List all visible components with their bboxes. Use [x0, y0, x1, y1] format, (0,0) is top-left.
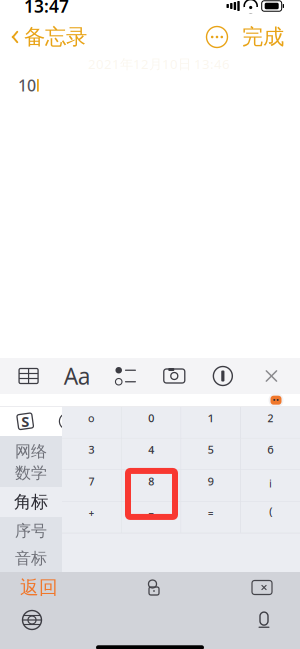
button[interactable]: ⁻ [122, 502, 181, 533]
button[interactable]: ¹ [181, 407, 240, 438]
staticText: ⁼ [208, 506, 214, 529]
button[interactable]: 键盘 [135, 408, 169, 434]
staticText: 2021年12月10日 13:46 [88, 55, 230, 73]
staticText: ⁻ [148, 506, 154, 529]
staticText: Aa [64, 361, 91, 391]
button[interactable]: ⁰ [122, 407, 181, 438]
button[interactable]: 序号 [0, 517, 62, 545]
staticText: ¹ [208, 411, 214, 434]
button[interactable]: ⁵ [181, 439, 240, 470]
button[interactable]: 搜狗输入法 [8, 408, 42, 434]
staticText: ⁸ [148, 474, 154, 497]
button[interactable]: ⁺ [62, 502, 121, 533]
button[interactable]: ⁱ [241, 470, 300, 501]
button[interactable]: 清单 [106, 359, 146, 393]
staticText: 完成 [242, 24, 284, 50]
staticText: 音标 [15, 549, 47, 568]
button[interactable]: 语音输入 [93, 408, 127, 434]
staticText: º [88, 411, 95, 434]
button[interactable]: º [62, 407, 121, 438]
button[interactable]: 语音输入 [244, 605, 284, 635]
staticText: ⁵ [208, 442, 214, 465]
button[interactable]: ⁴ [122, 439, 181, 470]
button[interactable]: 格式 [57, 359, 97, 393]
staticText: ⁶ [267, 442, 273, 465]
button[interactable]: 标记 [203, 359, 243, 393]
staticText: ⁱ [269, 474, 272, 497]
staticText: ⁷ [88, 474, 94, 497]
button[interactable]: 返回 [10, 571, 68, 604]
button[interactable]: 角标 [0, 487, 62, 517]
staticText: 序号 [15, 521, 47, 541]
button[interactable]: 表格 [9, 359, 49, 393]
button[interactable]: ³ [62, 439, 121, 470]
staticText: 13:47 [24, 0, 69, 17]
button[interactable]: ⁹ [181, 470, 240, 501]
staticText: 数学 [15, 463, 47, 483]
staticText: ⁴ [148, 442, 154, 465]
staticText: 10 [18, 75, 36, 96]
staticText: ³ [88, 442, 94, 465]
button[interactable]: 数学 [0, 459, 62, 487]
staticText: 网络 [15, 442, 47, 461]
staticText: 返回 [20, 576, 58, 599]
staticText: ⁺ [88, 506, 94, 529]
button[interactable]: 网络 [0, 436, 62, 459]
staticText: ⁹ [208, 474, 214, 497]
button[interactable]: 切换键盘 [12, 605, 52, 635]
button[interactable]: ⁸ [122, 470, 181, 501]
staticText: ⁰ [148, 411, 154, 434]
staticText: ⁽ [268, 506, 272, 529]
button[interactable]: ² [241, 407, 300, 438]
button[interactable]: 收起 [262, 408, 300, 434]
button[interactable]: 相机 [154, 359, 194, 393]
button[interactable]: ⁼ [181, 502, 240, 533]
button[interactable]: 锁定 [134, 574, 174, 600]
button[interactable]: 音标 [0, 545, 62, 572]
staticText: 备忘录 [24, 24, 87, 50]
button[interactable]: 更多 [202, 22, 232, 52]
button[interactable]: ⁷ [62, 470, 121, 501]
button[interactable]: 完成 [232, 18, 294, 56]
staticText: ² [267, 411, 273, 434]
staticText: S [21, 412, 29, 431]
button[interactable]: 删除 [240, 574, 284, 600]
button[interactable]: 手写 [177, 408, 211, 434]
button[interactable]: ⁽ [241, 502, 300, 533]
button[interactable]: ⁶ [241, 439, 300, 470]
button[interactable]: 表情 [50, 408, 84, 434]
staticText: 角标 [14, 491, 48, 513]
button[interactable]: 备忘录 [0, 18, 87, 56]
button[interactable]: 关闭 [251, 359, 291, 393]
